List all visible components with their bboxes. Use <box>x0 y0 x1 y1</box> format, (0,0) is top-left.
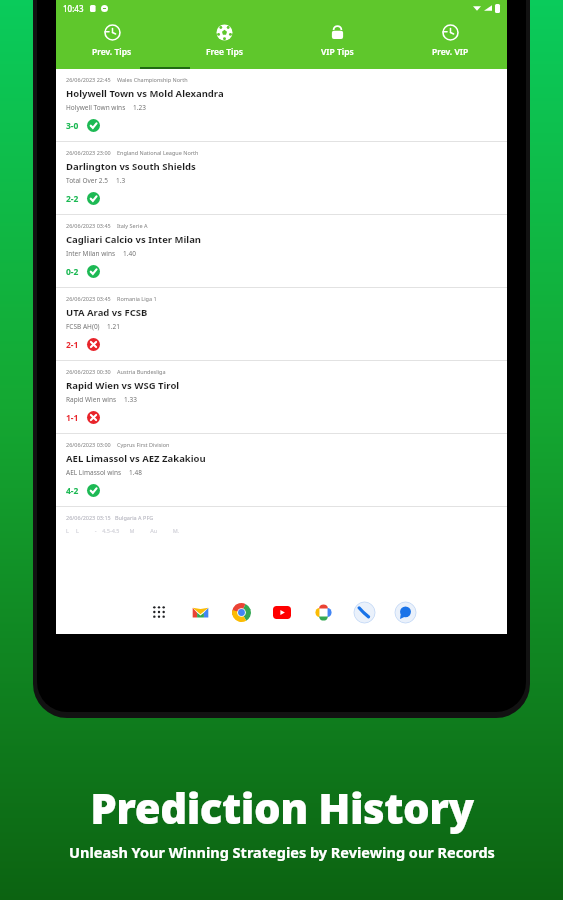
staticText: Holywell Town wins <box>66 103 126 112</box>
button[interactable]: VIP Tips <box>281 16 394 69</box>
button[interactable]: Messages <box>394 601 416 623</box>
staticText: AEL Limassol wins <box>66 468 122 477</box>
staticText: Cagliari Calcio vs Inter Milan <box>66 233 202 246</box>
button[interactable]: 26/06/2023 03:00 <box>56 434 507 506</box>
staticText: 26/06/2023 03:45 <box>66 295 111 302</box>
button[interactable]: Prev. Tips <box>56 16 168 69</box>
button[interactable]: All apps <box>148 601 170 623</box>
staticText: 26/06/2023 23:00 <box>66 149 111 156</box>
staticText: Free Tips <box>206 46 244 58</box>
staticText: Rapid Wien wins <box>66 395 117 404</box>
staticText: Prev. Tips <box>92 46 132 58</box>
staticText: 26/06/2023 22:45 <box>66 76 111 83</box>
button[interactable]: 26/06/2023 23:00 <box>56 142 507 214</box>
staticText: 2-1 <box>66 339 79 351</box>
staticText: Holywell Town vs Mold Alexandra <box>66 87 224 100</box>
staticText: 10:43 <box>63 3 84 14</box>
button[interactable]: 26/06/2023 00:30 <box>56 361 507 433</box>
staticText: Rapid Wien vs WSG Tirol <box>66 379 180 392</box>
button[interactable]: 26/06/2023 03:45 <box>56 215 507 287</box>
staticText: 1-1 <box>66 412 79 424</box>
staticText: 1.21 <box>107 322 120 331</box>
staticText: Italy Serie A <box>117 222 148 229</box>
staticText: England National League North <box>117 149 199 156</box>
staticText: Unleash Your Winning Strategies by Revie… <box>69 842 495 862</box>
staticText: 0-2 <box>66 266 79 278</box>
staticText: 26/06/2023 03:15 Bulgaria A PFG <box>66 514 154 521</box>
button[interactable]: Gmail <box>189 601 211 623</box>
button[interactable]: Phone <box>353 601 375 623</box>
staticText: 1.33 <box>124 395 137 404</box>
staticText: L L - 4.5-4.5 M Au M. <box>66 527 180 534</box>
staticText: 2-2 <box>66 193 79 205</box>
staticText: FCSB AH(0) <box>66 322 100 331</box>
staticText: 1.3 <box>116 176 126 185</box>
staticText: 1.23 <box>133 103 146 112</box>
staticText: 1.48 <box>129 468 142 477</box>
staticText: 26/06/2023 00:30 <box>66 368 111 375</box>
staticText: Austria Bundesliga <box>117 368 166 375</box>
staticText: Prediction History <box>90 779 474 836</box>
staticText: Prev. VIP <box>432 46 469 58</box>
staticText: 3-0 <box>66 120 79 132</box>
staticText: Wales Championship North <box>117 76 188 83</box>
button[interactable]: 26/06/2023 22:45 <box>56 69 507 141</box>
staticText: Cyprus First Division <box>117 441 170 448</box>
button[interactable]: 26/06/2023 03:45 <box>56 288 507 360</box>
staticText: AEL Limassol vs AEZ Zakakiou <box>66 452 206 465</box>
button[interactable]: Photos <box>312 601 334 623</box>
button[interactable]: YouTube <box>271 601 293 623</box>
staticText: VIP Tips <box>321 46 354 58</box>
button[interactable]: Prev. VIP <box>394 16 507 69</box>
staticText: Romania Liga 1 <box>117 295 157 302</box>
staticText: UTA Arad vs FCSB <box>66 306 148 319</box>
button[interactable]: Chrome <box>230 601 252 623</box>
staticText: 26/06/2023 03:00 <box>66 441 111 448</box>
staticText: 26/06/2023 03:45 <box>66 222 111 229</box>
button[interactable]: Free Tips <box>168 16 281 69</box>
staticText: Darlington vs South Shields <box>66 160 196 173</box>
staticText: 4-2 <box>66 485 79 497</box>
staticText: 1.40 <box>123 249 136 258</box>
staticText: Total Over 2.5 <box>66 176 109 185</box>
staticText: Inter Milan wins <box>66 249 116 258</box>
